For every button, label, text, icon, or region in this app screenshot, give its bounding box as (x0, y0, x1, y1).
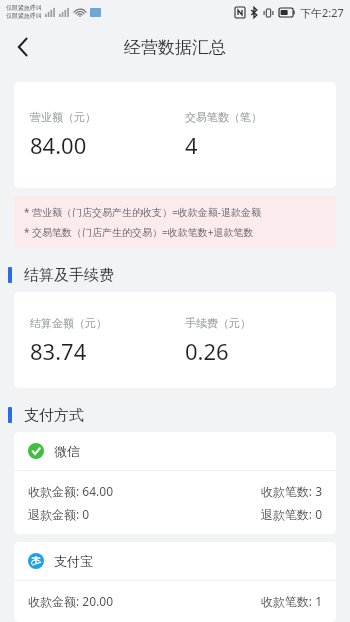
staticText: 支付宝 (54, 553, 93, 569)
staticText: 84.00 (30, 130, 87, 160)
staticText: 营业额（元） (30, 110, 96, 124)
other: 微信 (28, 443, 44, 459)
staticText: 退款金额: 0 (28, 506, 90, 522)
staticText: 4 (185, 130, 198, 160)
button[interactable]: 支付宝 (14, 542, 336, 622)
staticText: 结算金额（元） (30, 316, 107, 330)
staticText: * 交易笔数（门店产生的交易）=收款笔数+退款笔数 (24, 225, 254, 239)
staticText: 仅限紧急呼叫 (6, 4, 42, 12)
button[interactable]: 微信 (14, 432, 336, 534)
staticText: 交易笔数（笔） (185, 110, 262, 124)
staticText: 下午2:27 (300, 5, 344, 20)
staticText: 收款笔数: 3 (260, 483, 322, 499)
button[interactable]: 返回 (0, 24, 46, 70)
staticText: 0.26 (185, 336, 229, 366)
staticText: 经营数据汇总 (124, 37, 226, 58)
staticText: 收款金额: 64.00 (28, 483, 114, 499)
staticText: * 营业额（门店交易产生的收支）=收款金额-退款金额 (24, 205, 262, 219)
staticText: 收款笔数: 1 (260, 593, 322, 609)
staticText: 仅限紧急呼叫 (6, 12, 42, 20)
button[interactable]: 结算金额（元） (14, 292, 336, 388)
staticText: 83.74 (30, 336, 87, 366)
staticText: 手续费（元） (185, 316, 251, 330)
other: 支付宝 (28, 553, 44, 569)
staticText: 微信 (54, 443, 80, 459)
staticText: 支付方式 (24, 406, 84, 425)
staticText: 退款笔数: 0 (260, 506, 322, 522)
button[interactable]: 营业额（元） (14, 82, 336, 188)
staticText: 收款金额: 20.00 (28, 593, 114, 609)
staticText: 结算及手续费 (24, 266, 114, 285)
